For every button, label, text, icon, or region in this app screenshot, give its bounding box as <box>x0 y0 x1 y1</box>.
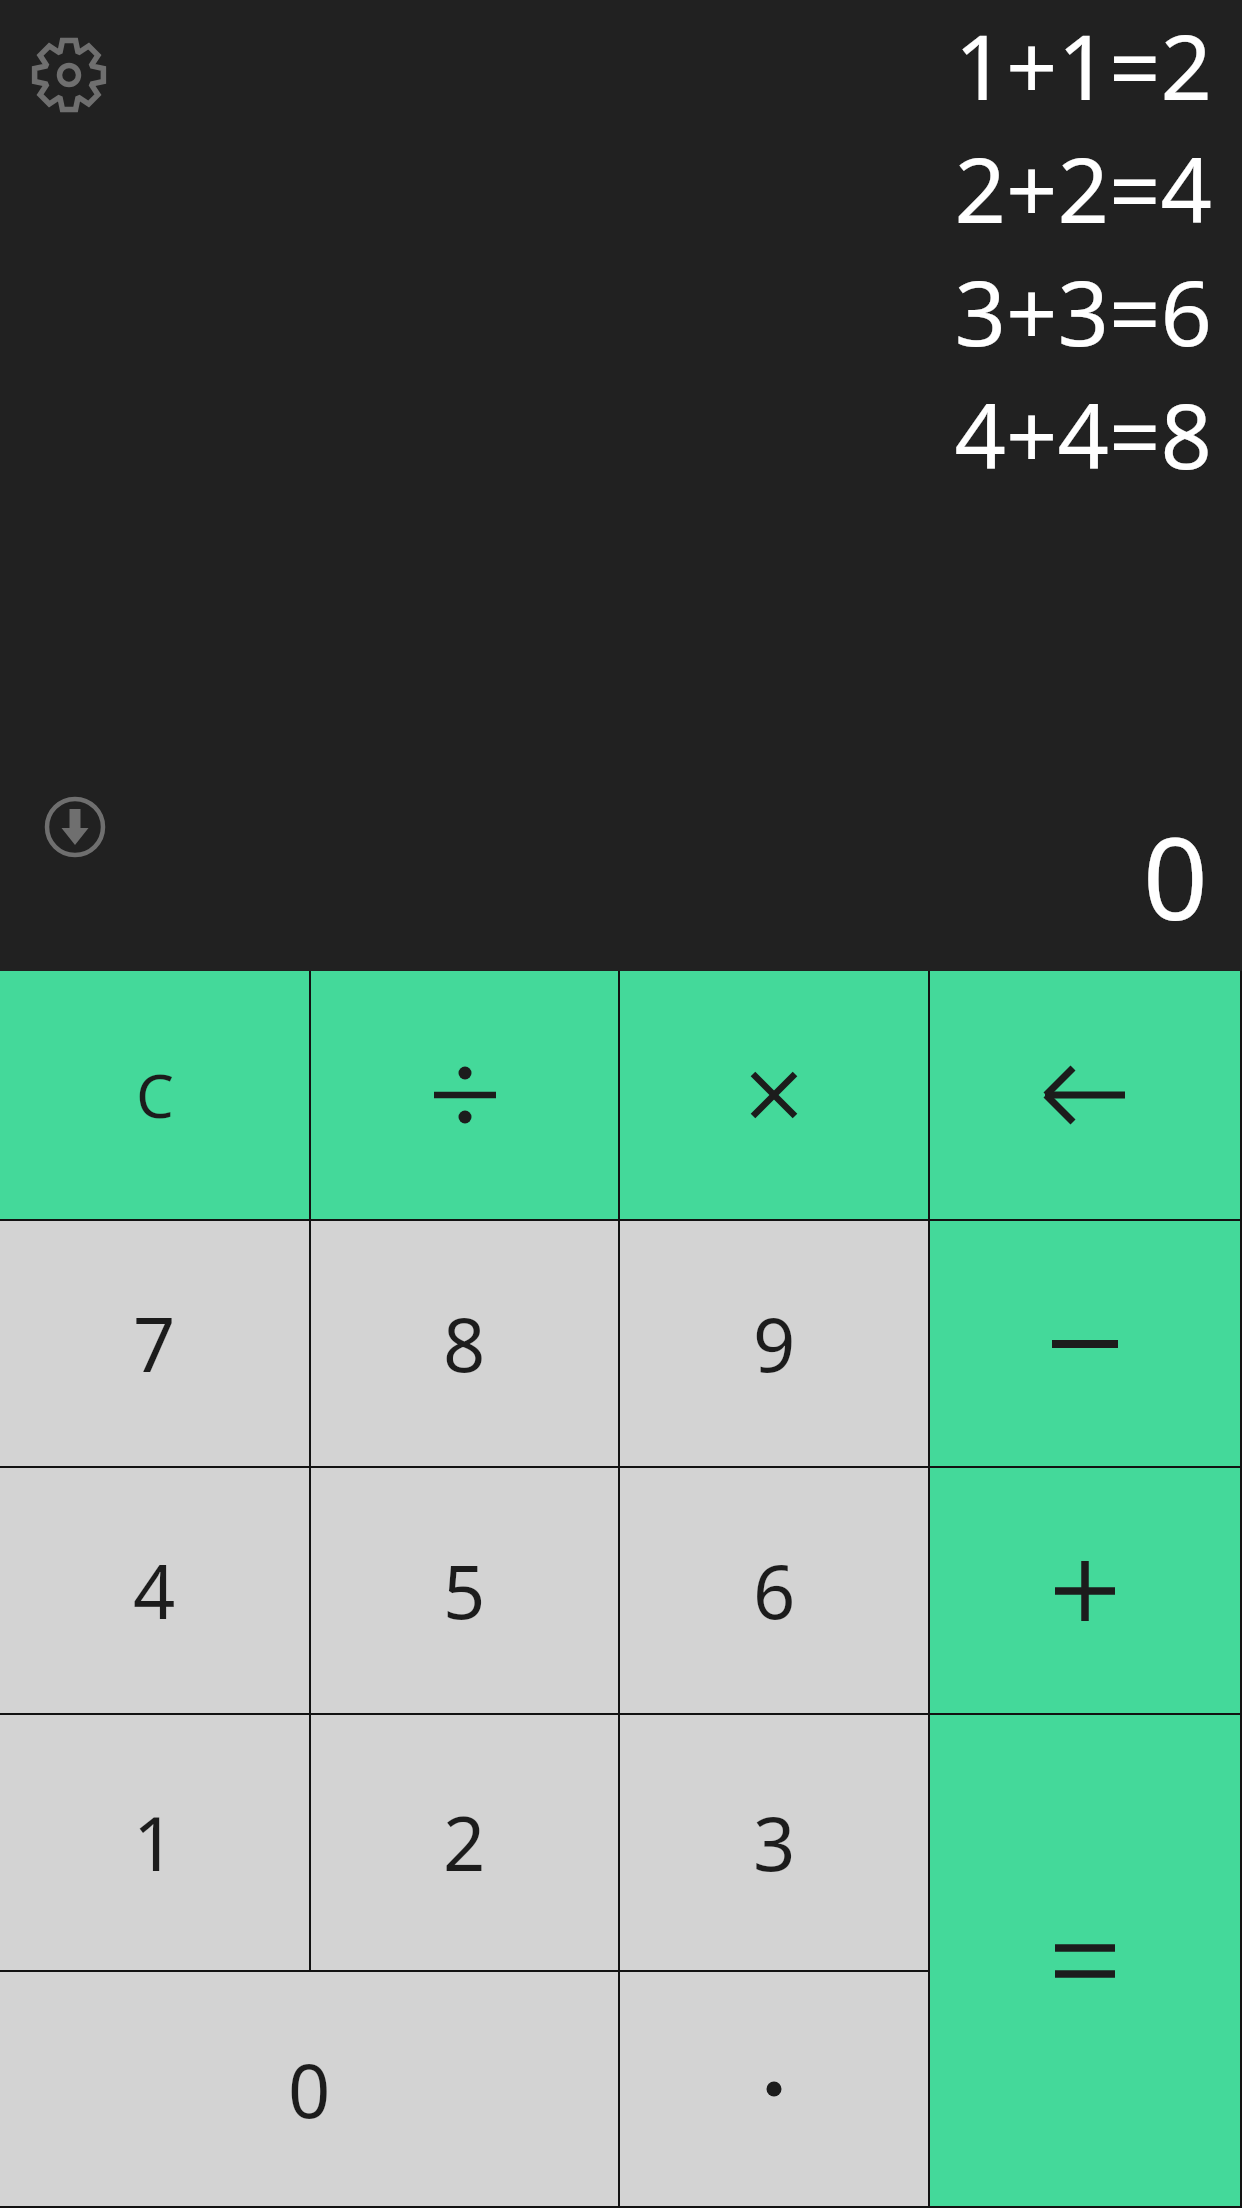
button[interactable]: Multiply <box>620 971 928 1219</box>
button[interactable]: Decimal point <box>620 1972 928 2206</box>
button[interactable]: 2 <box>311 1715 618 1970</box>
button[interactable]: 8 <box>311 1221 618 1466</box>
button[interactable]: 4 <box>0 1468 309 1713</box>
staticText: 1 <box>133 1792 176 1893</box>
button[interactable]: Backspace <box>930 971 1240 1219</box>
button[interactable]: 1+1=2 <box>954 4 1212 127</box>
button[interactable]: 3 <box>620 1715 928 1970</box>
staticText: 3+3=6 <box>954 250 1212 373</box>
staticText: 9 <box>753 1293 796 1394</box>
staticText: 3 <box>753 1792 796 1893</box>
button[interactable]: 1 <box>0 1715 309 1970</box>
button[interactable]: Divide <box>311 971 618 1219</box>
button[interactable]: Subtract <box>930 1221 1240 1466</box>
staticText: C <box>136 1054 174 1136</box>
button[interactable]: Settings <box>20 26 118 124</box>
staticText: 5 <box>443 1540 486 1641</box>
button[interactable]: Show history <box>27 779 123 875</box>
button[interactable]: 7 <box>0 1221 309 1466</box>
button[interactable]: 2+2=4 <box>954 127 1212 250</box>
staticText: 7 <box>133 1293 176 1394</box>
staticText: 2 <box>443 1792 486 1893</box>
button[interactable]: 3+3=6 <box>954 250 1212 373</box>
button[interactable]: 9 <box>620 1221 928 1466</box>
staticText: 0 <box>288 2039 331 2140</box>
button[interactable]: 0 <box>0 1972 618 2206</box>
staticText: 1+1=2 <box>954 4 1212 127</box>
button[interactable]: Equals <box>930 1715 1240 2206</box>
button[interactable]: 0 <box>1142 798 1208 953</box>
button[interactable]: C <box>0 971 309 1219</box>
button[interactable]: Add <box>930 1468 1240 1713</box>
staticText: 6 <box>753 1540 796 1641</box>
staticText: 2+2=4 <box>954 127 1212 250</box>
button[interactable]: 4+4=8 <box>954 373 1212 496</box>
staticText: 4 <box>133 1540 176 1641</box>
staticText: 8 <box>443 1293 486 1394</box>
button[interactable]: 5 <box>311 1468 618 1713</box>
button[interactable]: 6 <box>620 1468 928 1713</box>
staticText: 4+4=8 <box>954 373 1212 496</box>
